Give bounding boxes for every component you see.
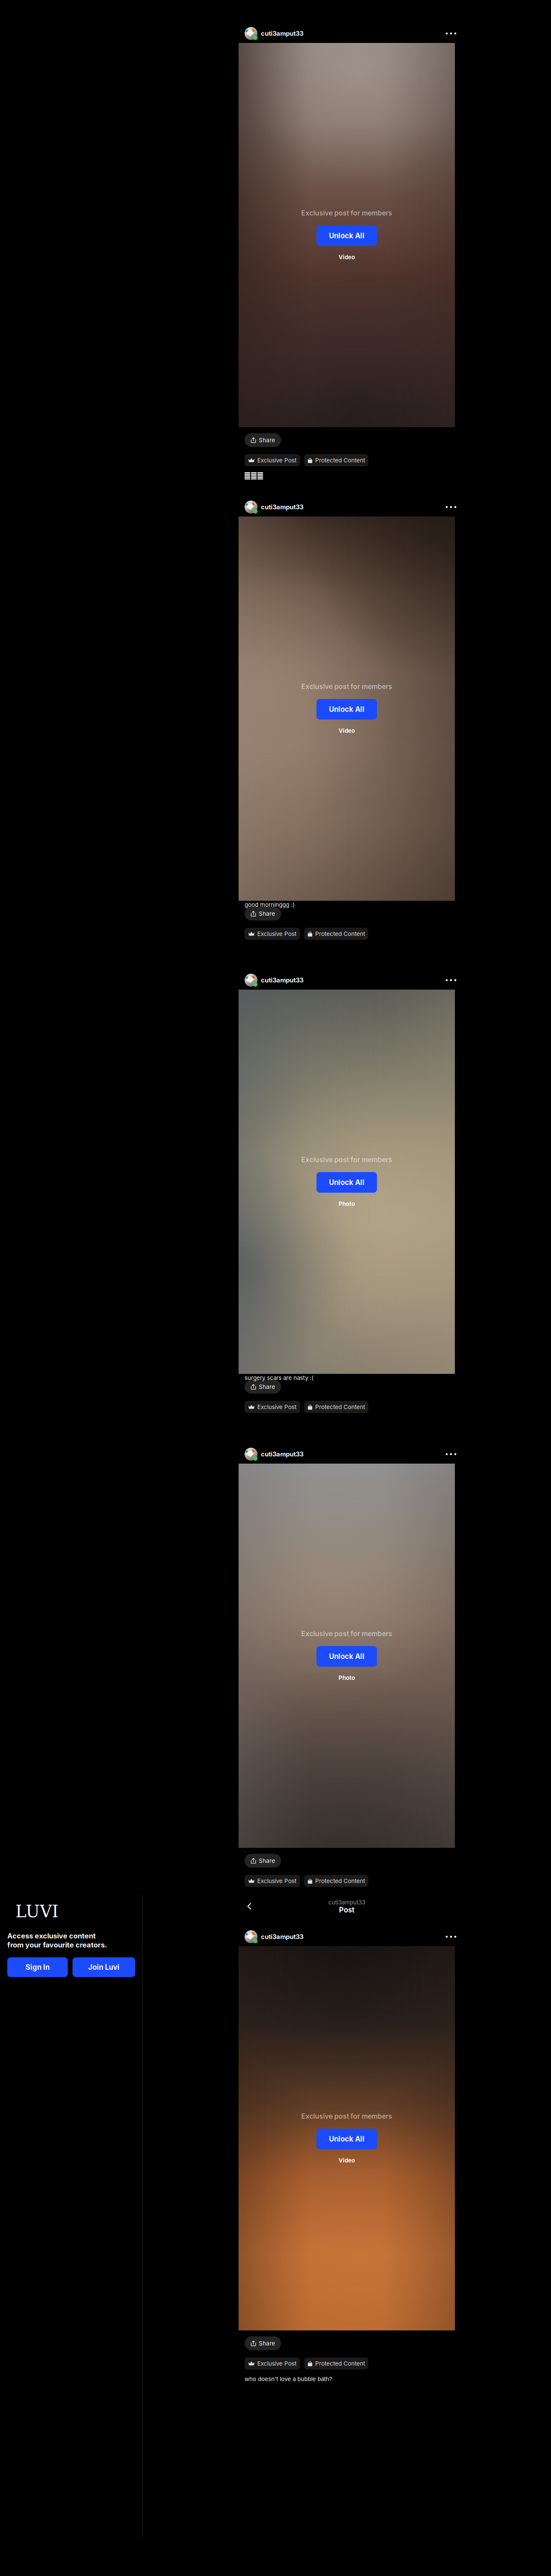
staticText: cuti3amput33 xyxy=(261,503,303,511)
staticText: Exclusive post for members xyxy=(301,209,392,217)
button[interactable]: Exclusive Post xyxy=(245,1875,300,1887)
button[interactable]: Protected Content xyxy=(304,1875,368,1887)
button[interactable]: cuti3amput33 xyxy=(245,501,303,513)
staticText: Exclusive post for members xyxy=(301,2112,392,2120)
staticText: Video xyxy=(339,2157,355,2164)
button[interactable]: Share xyxy=(245,433,281,447)
staticText: Share xyxy=(259,1383,275,1390)
staticText: Share xyxy=(259,437,275,444)
staticText: Share xyxy=(259,910,275,917)
staticText: cuti3amput33 xyxy=(328,1899,365,1906)
staticText: Protected Content xyxy=(315,1403,365,1410)
staticText: Photo xyxy=(339,1200,355,1207)
staticText: Photo xyxy=(339,1674,355,1681)
button[interactable]: More options xyxy=(441,27,461,40)
button[interactable]: Unlock All xyxy=(316,1172,377,1193)
staticText: Video xyxy=(339,254,355,261)
button[interactable]: Exclusive Post xyxy=(245,2357,300,2369)
button[interactable]: More options xyxy=(441,974,461,987)
button[interactable]: Unlock All xyxy=(316,699,377,720)
staticText: Protected Content xyxy=(315,2360,365,2367)
staticText: Exclusive Post xyxy=(257,1877,296,1884)
button[interactable]: Sign In xyxy=(7,1957,68,1977)
staticText: Exclusive Post xyxy=(257,930,296,937)
staticText: Sign In xyxy=(26,1963,50,1972)
button[interactable]: cuti3amput33 xyxy=(245,1448,303,1461)
staticText: Join Luvi xyxy=(88,1963,120,1972)
staticText: Share xyxy=(259,1857,275,1864)
staticText: Exclusive post for members xyxy=(301,1629,392,1638)
staticText: surgery scars are nasty :( xyxy=(245,1374,314,1381)
button[interactable]: Share xyxy=(245,1854,281,1868)
staticText: from your favourite creators. xyxy=(7,1941,107,1949)
staticText: Unlock All xyxy=(329,1652,365,1661)
button[interactable]: Unlock All xyxy=(316,2129,377,2149)
staticText: cuti3amput33 xyxy=(261,1933,303,1941)
button[interactable]: Unlock All xyxy=(316,225,377,246)
staticText: LUVI xyxy=(15,1902,58,1921)
button[interactable]: Protected Content xyxy=(304,2357,368,2369)
button[interactable]: More options xyxy=(441,1930,461,1943)
staticText: Unlock All xyxy=(329,2135,365,2143)
button[interactable]: Exclusive Post xyxy=(245,454,300,466)
staticText: Exclusive post for members xyxy=(301,682,392,691)
button[interactable]: Join Luvi xyxy=(73,1957,135,1977)
button[interactable]: cuti3amput33 xyxy=(245,1930,303,1943)
button[interactable]: Protected Content xyxy=(304,454,368,466)
staticText: good morninggg :) xyxy=(245,901,295,908)
staticText: Video xyxy=(339,727,355,734)
staticText: Unlock All xyxy=(329,705,365,714)
button[interactable]: More options xyxy=(441,1448,461,1461)
button[interactable]: Unlock All xyxy=(316,1646,377,1667)
staticText: Protected Content xyxy=(315,930,365,937)
button[interactable]: cuti3amput33 xyxy=(245,27,303,40)
button[interactable]: Share xyxy=(245,907,281,920)
button[interactable]: cuti3amput33 xyxy=(245,974,303,987)
staticText: cuti3amput33 xyxy=(261,976,303,984)
button[interactable]: Protected Content xyxy=(304,1401,368,1413)
staticText: Share xyxy=(259,2340,275,2347)
button[interactable]: More options xyxy=(441,501,461,513)
staticText: Exclusive Post xyxy=(257,2360,296,2367)
staticText: Unlock All xyxy=(329,231,365,240)
button[interactable]: Exclusive Post xyxy=(245,928,300,940)
button[interactable]: Share xyxy=(245,2336,281,2350)
button[interactable]: Share xyxy=(245,1380,281,1394)
staticText: Exclusive post for members xyxy=(301,1155,392,1164)
staticText: Protected Content xyxy=(315,1877,365,1884)
staticText: Exclusive Post xyxy=(257,1403,296,1410)
staticText: Post xyxy=(339,1906,354,1914)
button[interactable]: Protected Content xyxy=(304,928,368,940)
staticText: cuti3amput33 xyxy=(261,1450,303,1458)
staticText: Exclusive Post xyxy=(257,457,296,464)
staticText: Protected Content xyxy=(315,457,365,464)
staticText: Unlock All xyxy=(329,1178,365,1187)
staticText: Access exclusive content xyxy=(7,1932,96,1940)
button[interactable]: Back xyxy=(242,1899,257,1914)
button[interactable]: Exclusive Post xyxy=(245,1401,300,1413)
staticText: who doesn't love a bubble bath? xyxy=(245,2376,332,2382)
staticText: cuti3amput33 xyxy=(261,30,303,37)
